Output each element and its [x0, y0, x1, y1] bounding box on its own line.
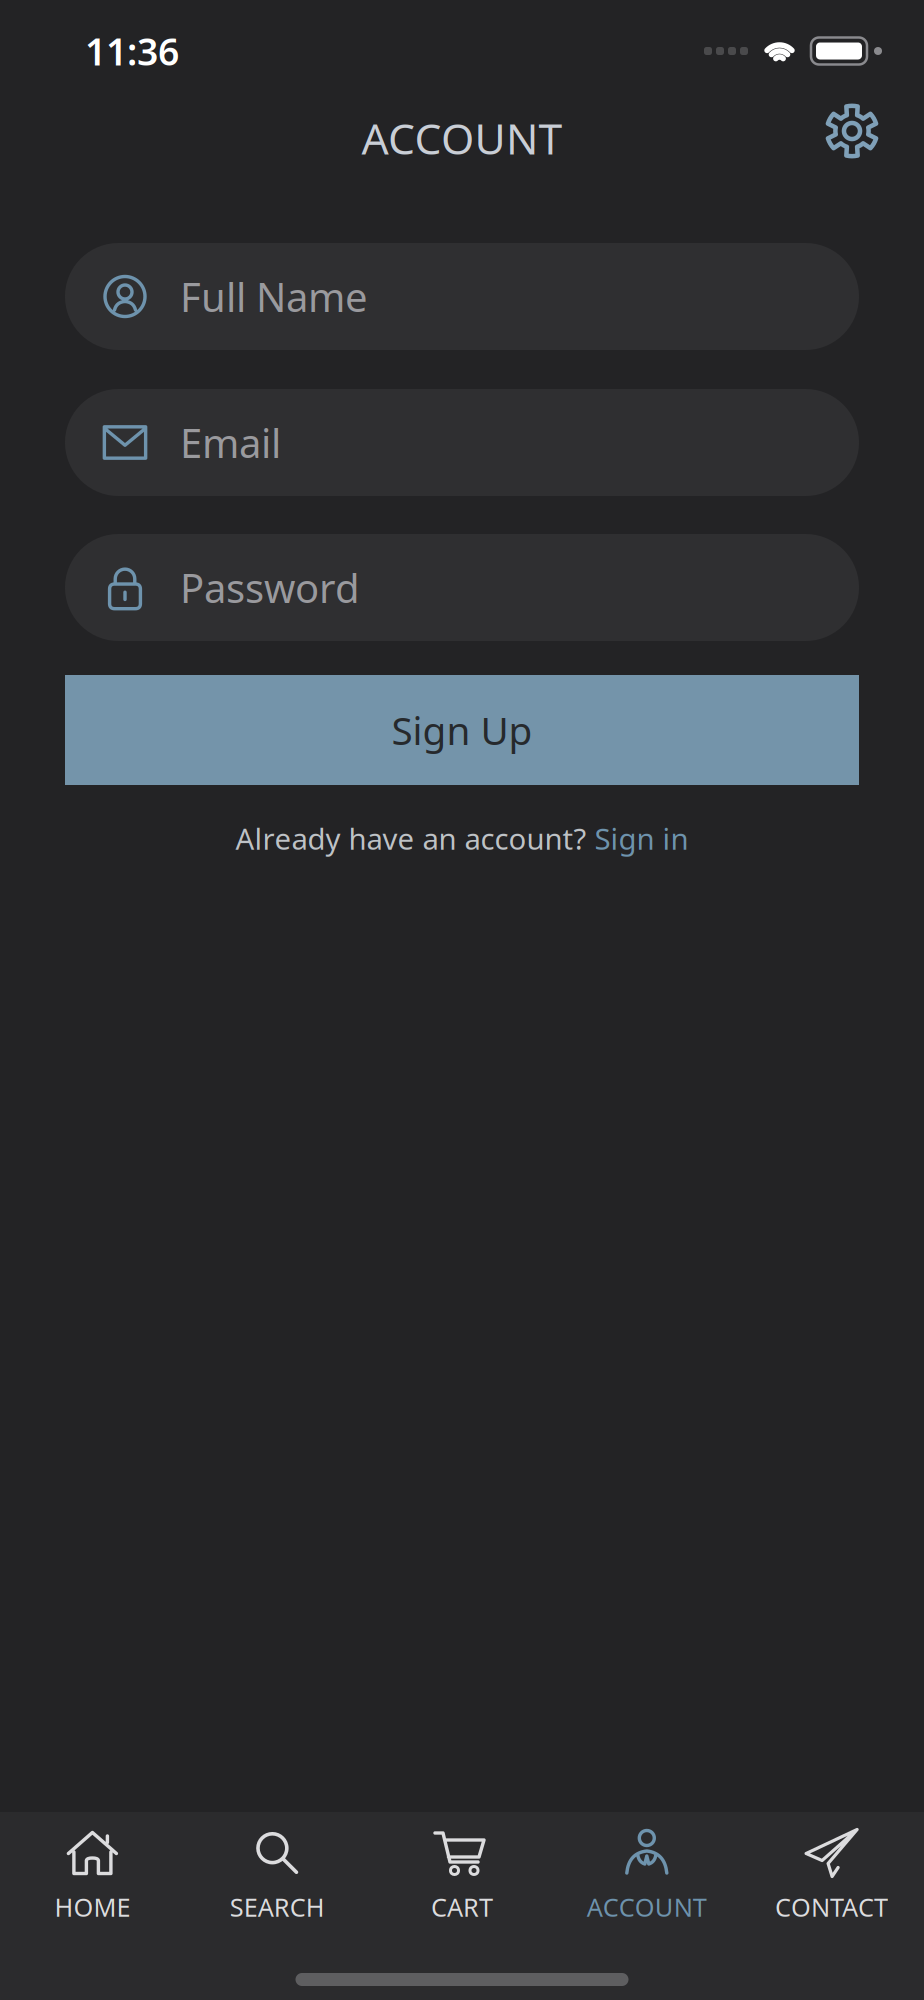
staticText: ACCOUNT — [361, 110, 562, 166]
button[interactable]: CART — [370, 1828, 554, 1924]
staticText: Sign Up — [391, 704, 532, 756]
button[interactable]: Sign Up — [65, 675, 859, 785]
staticText: 11:36 — [85, 26, 179, 76]
staticText: Email — [180, 416, 281, 469]
staticText: CONTACT — [775, 1890, 888, 1924]
staticText: Full Name — [180, 270, 368, 323]
staticText: Already have an account? — [235, 819, 594, 858]
button[interactable]: Email — [65, 389, 859, 496]
staticText: CART — [431, 1890, 493, 1924]
button[interactable]: SEARCH — [185, 1828, 370, 1924]
staticText: Sign in — [594, 819, 688, 858]
button[interactable]: CONTACT — [739, 1828, 924, 1924]
button[interactable]: Password — [65, 534, 859, 641]
button[interactable] — [822, 101, 882, 161]
button[interactable]: Full Name — [65, 243, 859, 350]
button[interactable]: HOME — [0, 1828, 185, 1924]
staticText: Password — [180, 561, 360, 614]
button[interactable]: Sign in — [594, 819, 688, 858]
staticText: ACCOUNT — [587, 1890, 707, 1924]
staticText: HOME — [54, 1890, 130, 1924]
button[interactable]: ACCOUNT — [554, 1828, 739, 1924]
staticText: SEARCH — [230, 1890, 325, 1924]
